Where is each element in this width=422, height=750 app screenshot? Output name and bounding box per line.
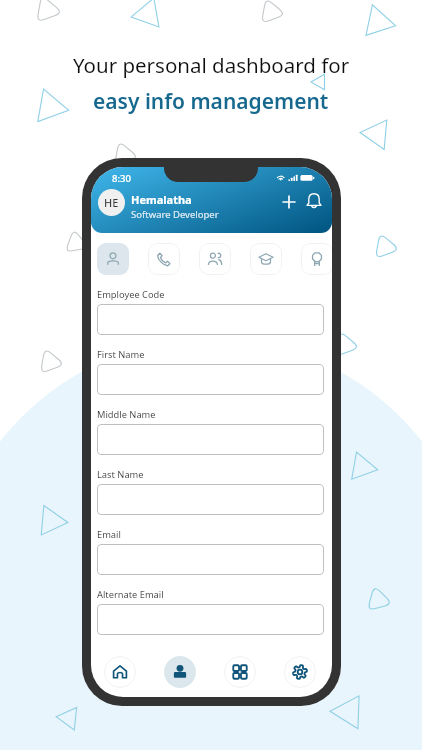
button[interactable]: Add (278, 191, 300, 213)
button[interactable] (97, 424, 324, 455)
staticText: Software Developer (131, 208, 219, 221)
button[interactable] (97, 604, 324, 635)
staticText: Middle Name (97, 408, 156, 421)
button[interactable] (97, 364, 324, 395)
staticText: Alternate Email (97, 588, 164, 601)
button[interactable] (97, 304, 324, 335)
staticText: Employee Code (97, 288, 165, 301)
button[interactable]: Notifications (305, 192, 323, 210)
button[interactable]: Apps (224, 656, 256, 688)
staticText: First Name (97, 348, 145, 361)
staticText: easy info management (93, 87, 329, 116)
button[interactable]: Awards (301, 243, 332, 275)
button[interactable]: Family (199, 243, 231, 275)
staticText: Hemalatha (131, 192, 192, 207)
staticText: Email (97, 528, 121, 541)
button[interactable]: Settings (284, 656, 316, 688)
staticText: 8:30 (112, 172, 131, 185)
button[interactable] (97, 544, 324, 575)
button[interactable] (97, 484, 324, 515)
button[interactable]: Education (250, 243, 282, 275)
staticText: Your personal dashboard for (73, 51, 350, 79)
button[interactable]: Profile (164, 656, 196, 688)
button[interactable]: Contact (148, 243, 180, 275)
staticText: HE (104, 195, 119, 210)
button[interactable]: Home (104, 656, 136, 688)
button[interactable]: Personal (97, 243, 129, 275)
staticText: Last Name (97, 468, 144, 481)
